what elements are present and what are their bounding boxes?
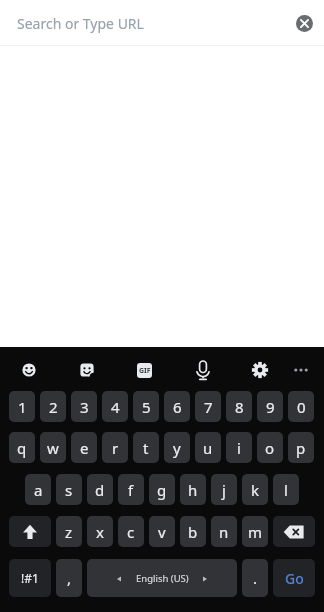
button[interactable]: f	[118, 474, 144, 505]
button[interactable]: Go	[273, 559, 315, 597]
staticText: l	[284, 480, 288, 500]
button[interactable]: t	[133, 432, 159, 463]
button[interactable]	[75, 358, 99, 382]
staticText: 2	[49, 397, 58, 417]
staticText: h	[188, 480, 198, 500]
button[interactable]: o	[257, 432, 283, 463]
staticText: .	[253, 568, 258, 588]
button[interactable]: z	[56, 516, 82, 547]
button[interactable]: u	[195, 432, 221, 463]
button[interactable]: m	[242, 516, 268, 547]
staticText: v	[158, 522, 166, 542]
staticText: !#1	[21, 570, 39, 586]
staticText: ,	[67, 568, 72, 588]
button[interactable]	[296, 15, 313, 32]
staticText: t	[143, 438, 149, 458]
button[interactable]: y	[164, 432, 190, 463]
button[interactable]	[191, 358, 215, 382]
staticText: 9	[266, 397, 275, 417]
staticText: c	[127, 522, 135, 542]
button[interactable]: 3	[71, 391, 97, 422]
button[interactable]: 2	[40, 391, 66, 422]
button[interactable]: Search or Type URL	[17, 14, 144, 33]
button[interactable]: g	[149, 474, 175, 505]
button[interactable]: GIF	[132, 358, 156, 382]
staticText: d	[95, 480, 105, 500]
button[interactable]	[248, 358, 272, 382]
button[interactable]	[17, 358, 41, 382]
button[interactable]: 1	[9, 391, 35, 422]
button[interactable]: d	[87, 474, 113, 505]
button[interactable]: p	[288, 432, 314, 463]
button[interactable]: w	[40, 432, 66, 463]
button[interactable]	[273, 516, 315, 547]
staticText: z	[65, 522, 73, 542]
staticText: j	[222, 480, 226, 500]
button[interactable]	[289, 358, 313, 382]
staticText: 1	[18, 397, 27, 417]
staticText: q	[17, 438, 27, 458]
staticText: m	[248, 522, 263, 542]
staticText: 7	[204, 397, 213, 417]
staticText: f	[128, 480, 134, 500]
button[interactable]: q	[9, 432, 35, 463]
staticText: w	[47, 438, 59, 458]
button[interactable]: b	[180, 516, 206, 547]
button[interactable]: x	[87, 516, 113, 547]
staticText: 4	[111, 397, 120, 417]
button[interactable]: s	[56, 474, 82, 505]
button[interactable]: h	[180, 474, 206, 505]
button[interactable]: 6	[164, 391, 190, 422]
button[interactable]: e	[71, 432, 97, 463]
button[interactable]: j	[211, 474, 237, 505]
staticText: b	[188, 522, 198, 542]
button[interactable]: ,	[56, 559, 82, 597]
staticText: r	[112, 438, 119, 458]
button[interactable]: 0	[288, 391, 314, 422]
staticText: p	[296, 438, 306, 458]
staticText: n	[219, 522, 229, 542]
button[interactable]: r	[102, 432, 128, 463]
staticText: 6	[173, 397, 182, 417]
staticText: k	[251, 480, 260, 500]
button[interactable]: English (US)	[87, 559, 237, 597]
staticText: y	[173, 438, 181, 458]
staticText: o	[265, 438, 275, 458]
button[interactable]	[9, 516, 51, 547]
staticText: g	[157, 480, 167, 500]
staticText: 3	[80, 397, 89, 417]
button[interactable]: 4	[102, 391, 128, 422]
button[interactable]: a	[25, 474, 51, 505]
button[interactable]: .	[242, 559, 268, 597]
staticText: i	[237, 438, 241, 458]
staticText: Go	[285, 569, 304, 588]
staticText: GIF	[139, 366, 151, 376]
button[interactable]: 5	[133, 391, 159, 422]
button[interactable]: v	[149, 516, 175, 547]
staticText: 5	[142, 397, 151, 417]
button[interactable]: c	[118, 516, 144, 547]
staticText: a	[34, 480, 43, 500]
button[interactable]: 8	[226, 391, 252, 422]
staticText: English (US)	[136, 572, 189, 585]
button[interactable]: l	[273, 474, 299, 505]
staticText: 8	[235, 397, 244, 417]
staticText: s	[65, 480, 73, 500]
staticText: 0	[297, 397, 306, 417]
staticText: e	[80, 438, 89, 458]
button[interactable]: i	[226, 432, 252, 463]
button[interactable]: n	[211, 516, 237, 547]
staticText: u	[203, 438, 213, 458]
staticText: x	[96, 522, 104, 542]
button[interactable]: 7	[195, 391, 221, 422]
button[interactable]: 9	[257, 391, 283, 422]
button[interactable]: !#1	[9, 559, 51, 597]
button[interactable]: k	[242, 474, 268, 505]
